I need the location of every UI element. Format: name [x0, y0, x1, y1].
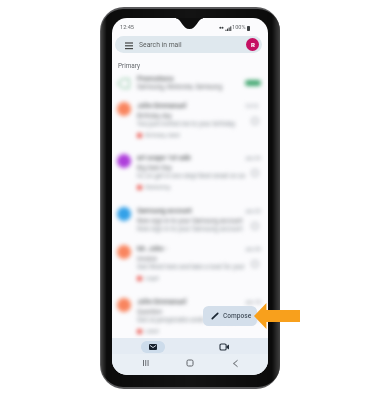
staticText: Label — [145, 328, 159, 335]
staticText: Marketing — [145, 184, 170, 191]
button[interactable]: Promotions — [112, 72, 268, 94]
staticText: Sed ut perspiciatis unde omnis iste — [137, 316, 235, 323]
staticText: 12:15 — [245, 103, 258, 109]
staticText: New sign in to your Samsung account on — [137, 225, 249, 232]
button[interactable]: Search in mail — [115, 36, 262, 53]
staticText: Birthday day — [137, 112, 172, 119]
staticText: Question — [137, 308, 163, 315]
staticText: Primary — [118, 62, 141, 70]
staticText: Promotions — [137, 75, 174, 83]
button[interactable]: Account — [246, 38, 259, 51]
staticText: 12:45 — [120, 24, 134, 31]
staticText: Samsung, Motorola, Samsung — [137, 83, 222, 91]
button[interactable]: John Emmanuel — [112, 293, 268, 338]
staticText: Hi, on get in one step! Best email on so — [137, 172, 246, 179]
staticText: R — [251, 41, 255, 48]
staticText: Compose — [223, 312, 252, 320]
button[interactable]: Compose — [203, 306, 257, 326]
staticText: Search in mail — [139, 41, 182, 49]
button[interactable]: Samsung account — [112, 202, 268, 242]
staticText: John Emmanuel — [137, 102, 187, 110]
staticText: Sed Word here and take a look for you! — [137, 263, 245, 270]
staticText: Jan 22 — [245, 208, 261, 214]
staticText: New sign in to your Samsung account — [137, 217, 243, 224]
button[interactable]: Mr. John - — [112, 240, 268, 288]
staticText: Birthday, label — [145, 132, 180, 139]
button[interactable]: Mail — [141, 341, 165, 353]
staticText: Jan 18 — [245, 299, 261, 305]
staticText: John Emmanuel — [137, 298, 187, 306]
staticText: Jan 20 — [245, 246, 261, 252]
staticText: Mr. John - — [137, 245, 168, 253]
staticText: Samsung account — [137, 207, 192, 215]
staticText: Legal — [145, 275, 159, 282]
staticText: art scape 1st sale — [137, 154, 192, 162]
button[interactable]: Meet — [212, 341, 236, 353]
button[interactable]: John Emmanuel — [112, 97, 268, 145]
staticText: Jan 24 — [245, 155, 261, 161]
staticText: You just invited me to your birthday — [137, 120, 236, 127]
staticText: Invoice — [137, 255, 157, 262]
button[interactable]: Recent apps — [138, 355, 154, 371]
button[interactable]: Back — [227, 355, 243, 371]
button[interactable]: art scape 1st sale — [112, 149, 268, 197]
staticText: 100% — [232, 24, 246, 31]
staticText: Big Sale Day — [137, 164, 172, 171]
button[interactable]: Home — [182, 355, 198, 371]
